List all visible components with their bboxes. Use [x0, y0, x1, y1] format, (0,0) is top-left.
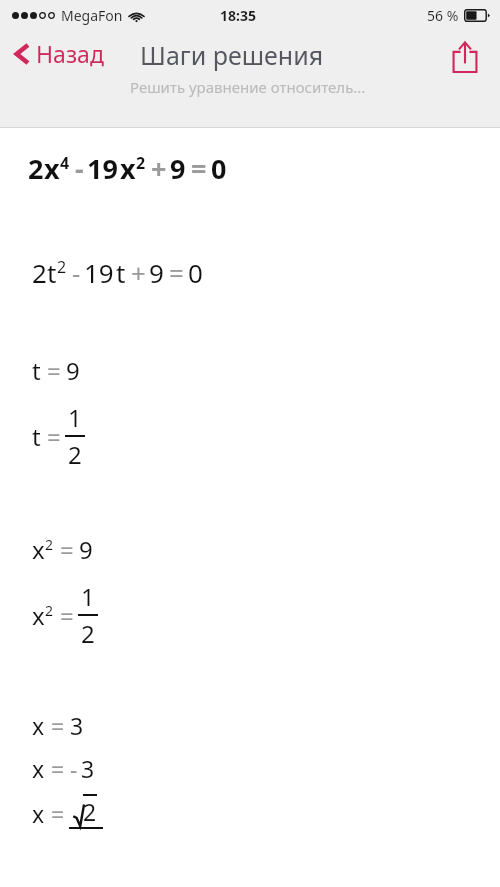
staticText: - [72, 255, 81, 290]
staticText: x [120, 150, 136, 187]
staticText: x [32, 798, 45, 829]
staticText: 19 [84, 255, 114, 290]
staticText: 9 [66, 354, 80, 387]
staticText: 2 [136, 152, 146, 174]
staticText: 3 [81, 753, 95, 784]
staticText: 18:35 [220, 6, 256, 25]
staticText: 4 [60, 152, 70, 174]
staticText: 2 [45, 601, 54, 620]
staticText: 0 [211, 150, 227, 187]
staticText: = [51, 753, 65, 784]
staticText: x [32, 710, 45, 741]
staticText: 1 [68, 401, 82, 434]
staticText: 2 [83, 796, 97, 827]
staticText: 2 [81, 617, 95, 650]
staticText: = [191, 150, 207, 187]
staticText: t [32, 420, 41, 453]
staticText: = [51, 798, 65, 829]
staticText: t [47, 255, 57, 290]
staticText: Назад [36, 38, 104, 69]
staticText: 2 [28, 150, 44, 187]
staticText: 9 [170, 150, 186, 187]
staticText: t [32, 354, 41, 387]
staticText: MegaFon [61, 6, 123, 25]
staticText: 0 [188, 255, 203, 290]
staticText: x [32, 599, 45, 632]
staticText: = [51, 710, 65, 741]
staticText: x [32, 753, 45, 784]
staticText: + [131, 255, 146, 290]
staticText: - [70, 753, 78, 784]
staticText: 2 [45, 535, 54, 554]
staticText: Решить уравнение относитель... [130, 77, 366, 97]
button[interactable]: Share [444, 36, 486, 78]
staticText: 19 [87, 150, 118, 187]
staticText: + [151, 150, 167, 187]
staticText: x [44, 150, 60, 187]
staticText: 3 [70, 710, 84, 741]
staticText: x [32, 533, 45, 566]
staticText: - [75, 150, 84, 187]
button[interactable]: Назад [10, 32, 108, 75]
staticText: = [169, 255, 184, 290]
staticText: 9 [149, 255, 164, 290]
staticText: 2 [32, 255, 47, 290]
staticText: = [47, 420, 61, 453]
staticText: 1 [81, 580, 95, 613]
staticText: 2 [68, 438, 82, 471]
staticText: = [47, 354, 61, 387]
staticText: Шаги решения [140, 38, 324, 72]
staticText: 9 [79, 533, 93, 566]
staticText: 2 [57, 256, 67, 278]
staticText: 56 % [427, 6, 459, 25]
staticText: = [60, 533, 74, 566]
staticText: t [116, 255, 126, 290]
staticText: = [60, 599, 74, 632]
